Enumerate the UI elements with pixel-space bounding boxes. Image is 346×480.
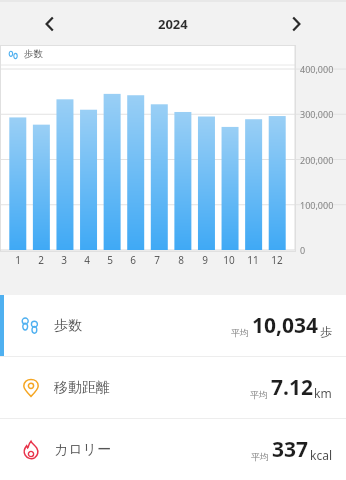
staticText: 平均	[250, 389, 268, 400]
staticText: 7	[154, 253, 160, 267]
button[interactable]: 歩数	[0, 295, 346, 356]
button[interactable]: Previous year	[34, 8, 66, 40]
button[interactable]: Next year	[280, 8, 312, 40]
staticText: 平均	[251, 451, 269, 462]
staticText: 4	[84, 253, 90, 267]
staticText: 歩数	[54, 317, 82, 335]
staticText: カロリー	[54, 441, 111, 459]
staticText: 8	[178, 253, 184, 267]
staticText: 移動距離	[54, 379, 110, 397]
staticText: 10,034	[252, 311, 319, 340]
staticText: 6	[130, 253, 136, 267]
staticText: 7.12	[271, 373, 313, 402]
staticText: kcal	[310, 447, 332, 463]
staticText: 0	[300, 244, 306, 256]
staticText: 11	[247, 253, 259, 267]
staticText: 400,000	[300, 63, 334, 75]
staticText: 平均	[231, 327, 249, 338]
staticText: 100,000	[300, 199, 334, 211]
staticText: 歩	[320, 324, 332, 339]
staticText: 3	[61, 253, 67, 267]
staticText: 2	[38, 253, 44, 267]
staticText: 12	[271, 253, 283, 267]
staticText: 歩数	[24, 48, 43, 60]
staticText: 300,000	[300, 108, 334, 120]
staticText: 337	[272, 435, 309, 464]
staticText: 9	[202, 253, 208, 267]
staticText: 1	[15, 253, 21, 267]
staticText: 200,000	[300, 154, 334, 166]
staticText: km	[314, 385, 332, 401]
staticText: 5	[107, 253, 113, 267]
staticText: 10	[223, 253, 235, 267]
staticText: 2024	[158, 15, 188, 33]
button[interactable]: 移動距離	[0, 357, 346, 418]
button[interactable]: カロリー	[0, 419, 346, 480]
